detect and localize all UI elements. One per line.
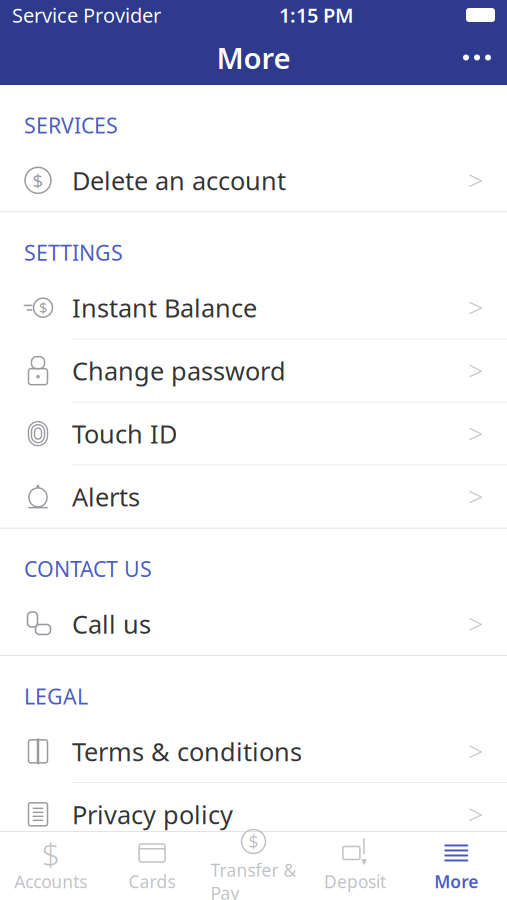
staticText: Touch ID [72,417,177,450]
staticText: Cards [129,870,176,893]
staticText: Change password [72,354,286,387]
staticText: LEGAL [24,682,88,710]
staticText: Terms & conditions [72,734,302,768]
button[interactable]: Terms & conditions [0,720,507,782]
staticText: > [468,734,483,769]
staticText: 1:15 PM [279,2,354,28]
button[interactable]: Cards [101,832,203,900]
staticText: $ [248,830,258,853]
button[interactable]: Change password [0,340,507,402]
staticText: More [434,870,478,893]
staticText: Call us [72,607,151,641]
staticText: Instant Balance [72,291,257,324]
button[interactable]: $ [0,277,507,339]
staticText: $ [32,168,43,193]
staticText: Service Provider [12,2,161,28]
staticText: Alerts [72,480,140,513]
staticText: $ [39,298,47,317]
staticText: > [468,290,483,325]
button[interactable]: Call us [0,593,507,655]
staticText: Delete an account [72,163,286,197]
staticText: $ [42,832,60,874]
staticText: > [468,163,483,198]
staticText: > [468,797,483,832]
staticText: Deposit [324,870,386,893]
button[interactable]: More options [447,30,507,85]
button[interactable]: Touch ID [0,403,507,465]
staticText: Transfer & Pay [210,858,296,900]
staticText: CONTACT US [24,555,152,583]
staticText: More [216,38,290,77]
staticText: ▾ [361,854,367,868]
button[interactable]: More [406,832,507,900]
staticText: Privacy policy [72,797,233,831]
button[interactable]: $ [203,832,304,900]
staticText: SERVICES [24,111,118,139]
button[interactable]: $ [0,832,101,900]
button[interactable]: Privacy policy [0,783,507,845]
button[interactable]: Alerts [0,466,507,528]
button[interactable]: ▾ [304,832,406,900]
staticText: > [468,416,483,451]
staticText: SETTINGS [24,238,123,267]
staticText: > [468,353,483,388]
button[interactable]: $ [0,149,507,211]
staticText: > [468,479,483,514]
staticText: Accounts [14,870,87,893]
staticText: > [468,606,483,642]
